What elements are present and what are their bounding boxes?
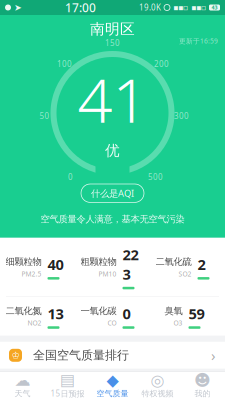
staticText: 臭氧 xyxy=(164,305,182,317)
staticText: 0 xyxy=(68,172,73,182)
staticText: 43 xyxy=(211,4,217,11)
staticText: 什么是AQI xyxy=(91,187,134,199)
button[interactable]: ♔ xyxy=(0,342,225,369)
staticText: 优 xyxy=(105,142,120,160)
staticText: 59 xyxy=(188,304,204,323)
staticText: 粗颗粒物 xyxy=(80,256,116,267)
staticText: 一氧化碳 xyxy=(80,305,116,317)
staticText: 空气质量 xyxy=(96,389,128,398)
staticText: 0 xyxy=(122,304,130,323)
staticText: 天气 xyxy=(14,389,30,398)
staticText: ➤ xyxy=(14,2,22,13)
staticText: O3 xyxy=(173,319,182,327)
staticText: 223 xyxy=(122,245,138,284)
staticText: 40 xyxy=(47,255,63,274)
staticText: 200 xyxy=(154,59,169,69)
staticText: ▪▪▫ xyxy=(173,3,188,12)
staticText: 二氧化氮 xyxy=(5,305,41,317)
staticText: 13 xyxy=(47,304,63,323)
staticText: 细颗粒物 xyxy=(5,256,41,267)
staticText: 更新于16:59 xyxy=(179,37,218,45)
staticText: PM2.5 xyxy=(21,269,41,278)
staticText: 南明区 xyxy=(90,20,135,38)
staticText: 41 xyxy=(77,58,147,140)
staticText: 19.0K xyxy=(139,2,161,13)
staticText: ▪▪▫ xyxy=(191,3,206,12)
staticText: › xyxy=(211,346,216,365)
staticText: 50 xyxy=(39,111,49,121)
staticText: 空气质量令人满意，基本无空气污染 xyxy=(40,213,184,225)
button[interactable]: ☁ xyxy=(0,370,45,400)
staticText: ◎ xyxy=(150,371,164,389)
staticText: 17:00 xyxy=(65,0,96,15)
staticText: 2 xyxy=(197,255,205,274)
staticText: 全国空气质量排行 xyxy=(33,348,129,363)
staticText: ◆ xyxy=(106,371,118,389)
staticText: ♔ xyxy=(11,350,19,361)
staticText: 15日预报 xyxy=(50,388,84,399)
button[interactable]: 什么是AQI xyxy=(81,184,144,202)
staticText: 特权视频 xyxy=(141,389,173,398)
staticText: SO2 xyxy=(178,269,191,278)
staticText: 二氧化硫 xyxy=(155,256,191,267)
staticText: ☁ xyxy=(14,371,30,389)
button[interactable]: ◆ xyxy=(90,370,135,400)
staticText: 300 xyxy=(174,111,189,121)
staticText: ▤ xyxy=(60,371,75,389)
staticText: 150 xyxy=(105,38,120,48)
staticText: PM10 xyxy=(98,269,116,278)
button[interactable]: ▤ xyxy=(45,369,90,400)
staticText: 500 xyxy=(148,172,163,182)
button[interactable]: ☻ xyxy=(180,370,225,400)
staticText: 我的 xyxy=(194,389,210,398)
staticText: 100 xyxy=(57,59,72,69)
staticText: 健康建议 xyxy=(9,382,53,395)
staticText: NO2 xyxy=(27,319,41,327)
button[interactable]: ◎ xyxy=(135,370,180,400)
staticText: ☻ xyxy=(194,371,211,389)
staticText: CO xyxy=(107,319,116,327)
